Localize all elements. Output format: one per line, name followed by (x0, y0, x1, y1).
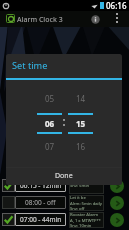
staticText: Rooster Alarm A, 1 x MTWTF** Snz: 10min (70, 212, 101, 228)
staticText: Snz: 5min (70, 183, 90, 189)
button[interactable]: Open alarm settings (110, 196, 124, 210)
staticText: Alarm Clock 3 (17, 15, 63, 25)
staticText: Done (55, 171, 73, 181)
button[interactable]: Open alarm settings (110, 179, 124, 193)
button[interactable]: 08:00 - off (0, 195, 129, 213)
button[interactable]: 06:15 - 12min (0, 178, 129, 196)
staticText: 15 (76, 118, 86, 129)
staticText: 08:00 - off (25, 198, 56, 207)
button[interactable]: 07:00 - 44min (0, 212, 129, 230)
staticText: 14 (76, 93, 86, 104)
button[interactable]: More options (111, 12, 123, 24)
staticText: 05 (45, 93, 55, 104)
staticText: 07:00 - 44min (20, 215, 62, 224)
button[interactable]: Open alarm settings (110, 213, 124, 227)
staticText: Let it be Alrm: 5min daily Snz: off (70, 195, 102, 211)
staticText: 06:15 - 12min (20, 181, 62, 190)
staticText: 07 (45, 141, 55, 152)
staticText: 06:16 (106, 0, 127, 11)
button[interactable]: Info (88, 12, 102, 26)
button[interactable]: Done (6, 168, 122, 184)
staticText: Set time (12, 59, 48, 72)
staticText: 16 (76, 141, 86, 152)
staticText: 06 (45, 118, 55, 129)
